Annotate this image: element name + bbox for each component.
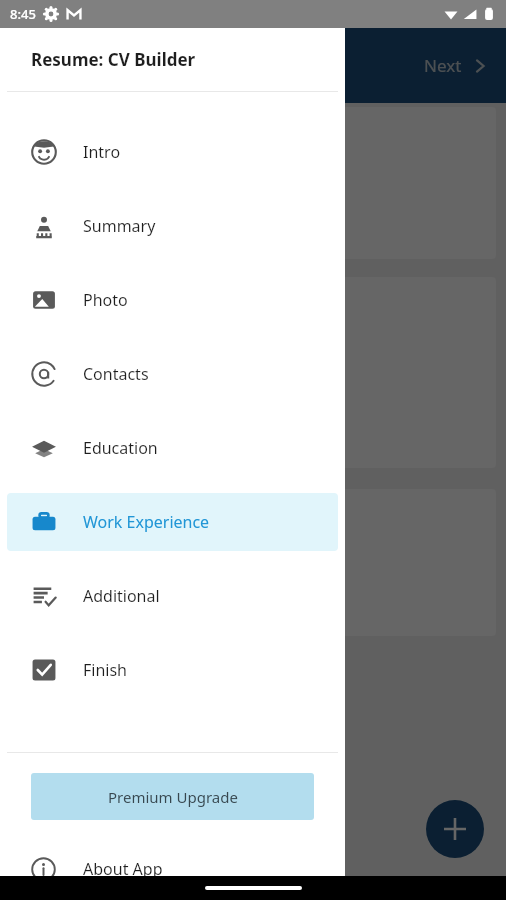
staticText: 8:45 xyxy=(10,5,36,23)
button[interactable]: Summary xyxy=(7,197,338,255)
button[interactable]: Move down xyxy=(82,576,126,620)
staticText: Contacts xyxy=(83,363,149,385)
button[interactable]: Add xyxy=(426,800,484,858)
button[interactable]: Move down xyxy=(82,199,126,243)
button[interactable]: Intro xyxy=(7,123,338,181)
staticText: Manager of xyxy=(24,299,112,321)
staticText: About App xyxy=(83,858,163,880)
staticText: Premium Upgrade xyxy=(108,787,238,807)
staticText: Resume: CV Builder xyxy=(31,48,196,71)
button[interactable]: Photo xyxy=(7,271,338,329)
button[interactable]: Contacts xyxy=(7,345,338,403)
button[interactable]: Finish xyxy=(7,641,338,699)
button[interactable]: Move down xyxy=(82,408,126,452)
staticText: Additional xyxy=(83,585,160,607)
button[interactable]: Move up xyxy=(16,576,60,620)
staticText: Photo xyxy=(83,289,128,311)
staticText: Intro xyxy=(83,141,121,163)
staticText: Work Experience xyxy=(83,511,210,533)
staticText: Summary xyxy=(83,215,156,237)
button[interactable]: Move up xyxy=(16,199,60,243)
button[interactable]: Premium Upgrade xyxy=(31,773,314,820)
staticText: Next xyxy=(424,54,462,77)
button[interactable]: Education xyxy=(7,419,338,477)
button[interactable]: Additional xyxy=(7,567,338,625)
staticText: Education xyxy=(83,437,158,459)
button[interactable]: About App xyxy=(0,844,345,894)
staticText: Finish xyxy=(83,659,128,681)
button[interactable]: Move up xyxy=(16,408,60,452)
button[interactable]: Next xyxy=(424,54,490,77)
button[interactable]: Work Experience xyxy=(7,493,338,551)
